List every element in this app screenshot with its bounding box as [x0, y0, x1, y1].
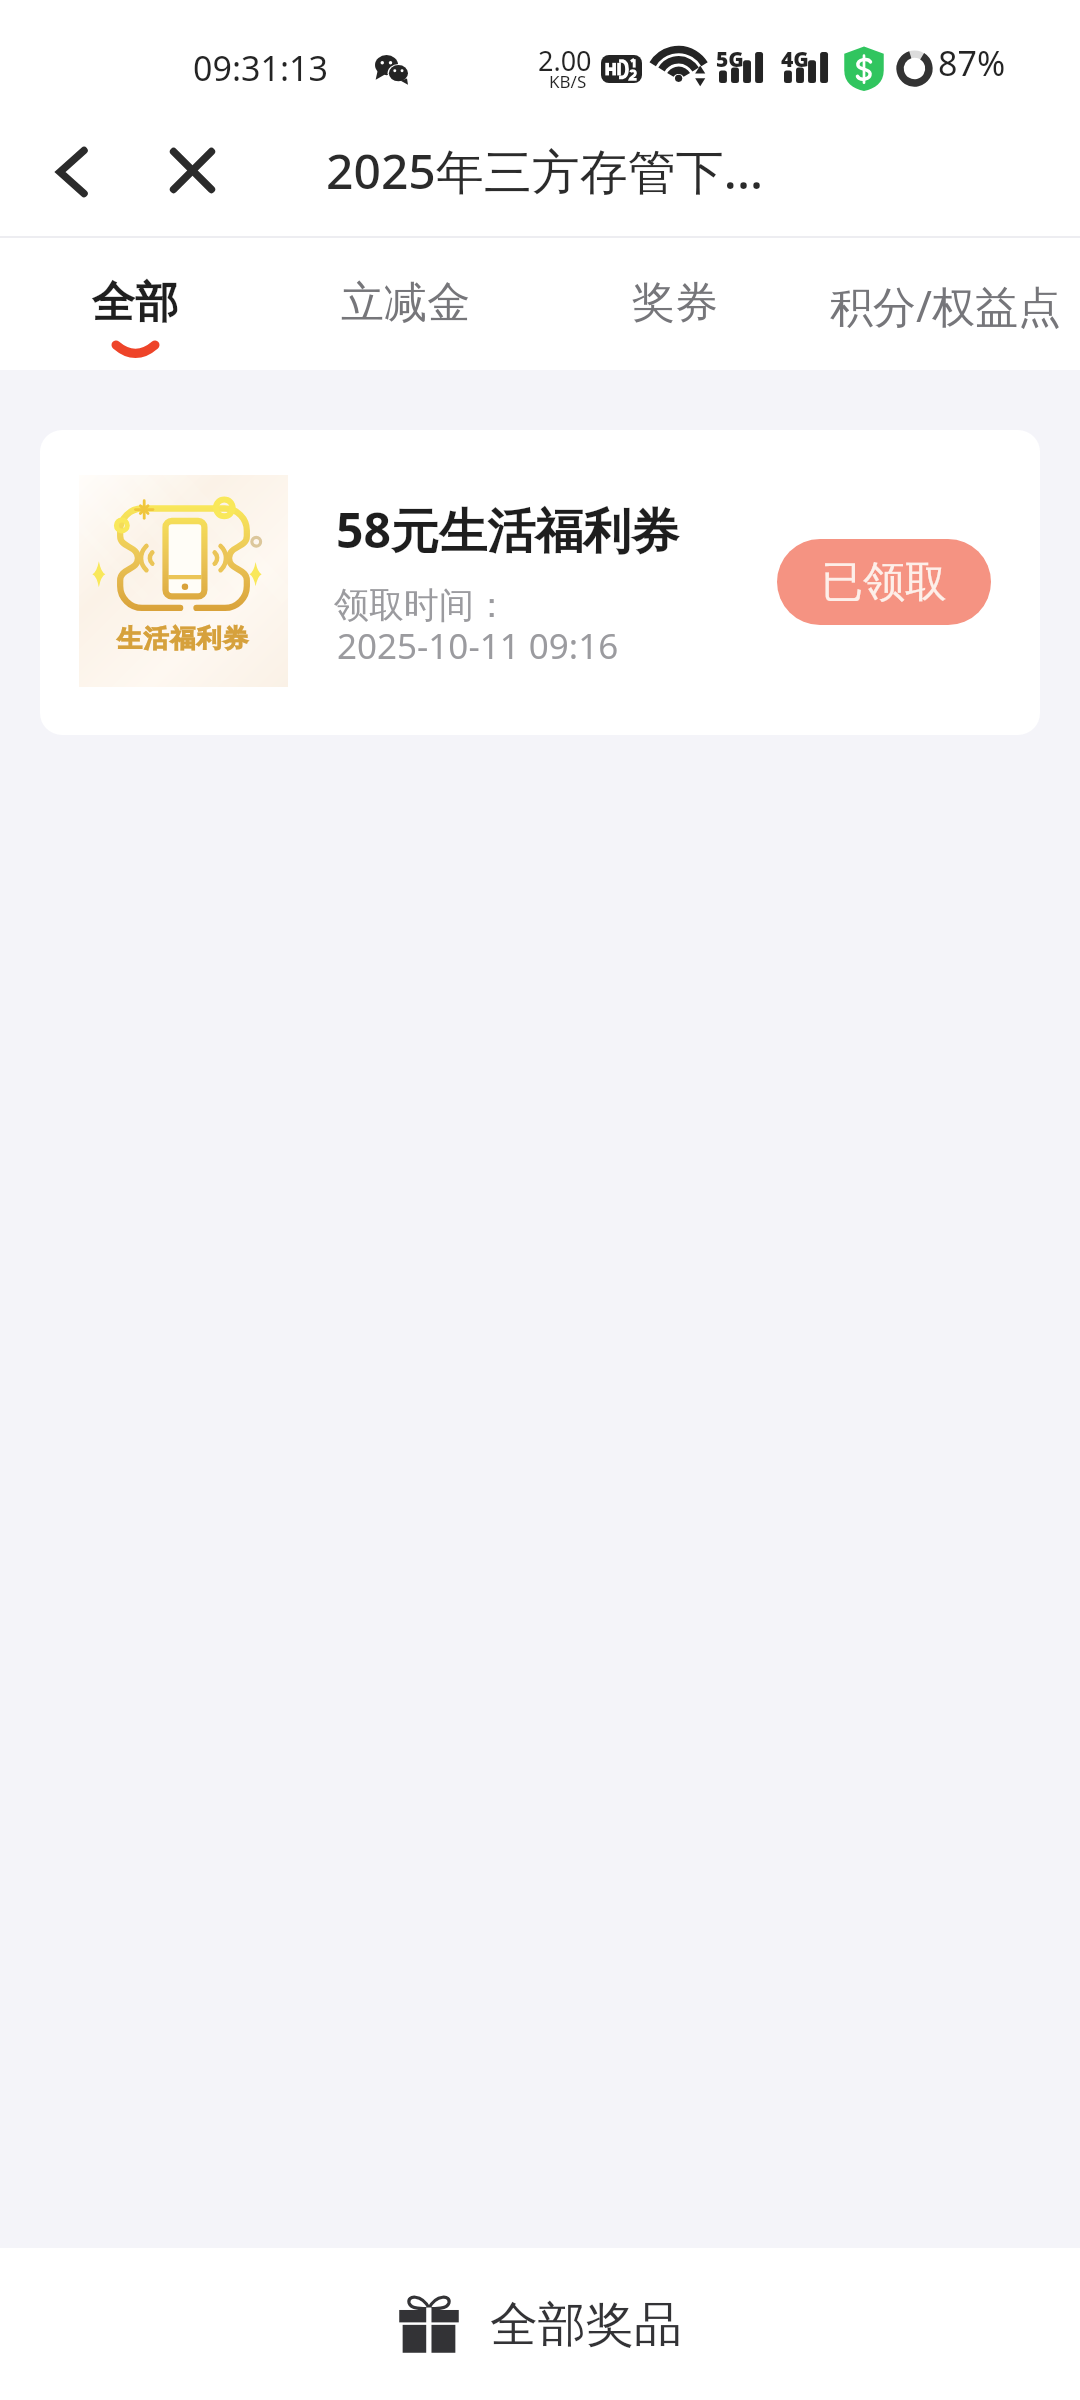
staticText: 奖券	[632, 276, 718, 330]
staticText: 2025年三方存管下...	[326, 138, 763, 204]
staticText: 领取时间：	[334, 583, 509, 627]
staticText: 已领取	[821, 556, 947, 609]
button[interactable]: 积分/权益点	[810, 240, 1080, 370]
staticText: 全部奖品	[490, 2295, 682, 2355]
button[interactable]: 全部奖品	[362, 2262, 718, 2384]
staticText: 2025-10-11 09:16	[337, 622, 619, 670]
staticText: 58元生活福利券	[336, 497, 679, 563]
staticText: 生活福利券	[117, 623, 250, 654]
staticText: 立减金	[341, 276, 470, 330]
button[interactable]: 奖券	[540, 240, 810, 370]
staticText: 积分/权益点	[830, 276, 1061, 335]
staticText: 09:31:13	[193, 45, 328, 91]
button[interactable]: 立减金	[270, 240, 540, 370]
staticText: 4G	[781, 45, 809, 74]
button[interactable]: Back	[30, 130, 114, 214]
button[interactable]: Close	[150, 128, 234, 212]
button[interactable]: 全部	[0, 240, 270, 370]
staticText: 87%	[938, 40, 1006, 86]
staticText: 全部	[92, 276, 178, 330]
staticText: KB/S	[549, 70, 587, 93]
staticText: 5G	[716, 45, 744, 74]
button[interactable]: 已领取	[777, 539, 991, 625]
staticText: 2.00	[538, 42, 592, 79]
button[interactable]: 生活福利券	[40, 430, 1040, 735]
